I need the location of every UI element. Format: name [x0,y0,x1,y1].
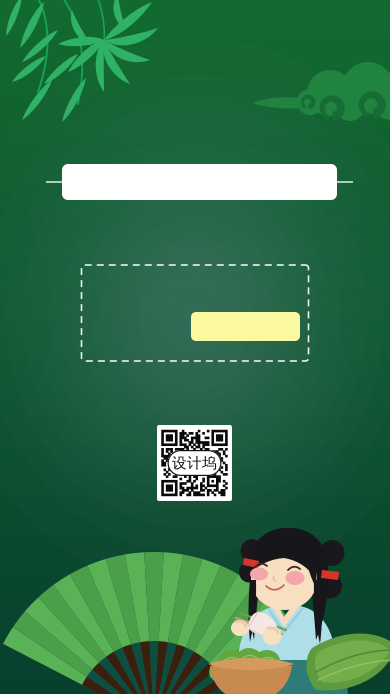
staticText: 设计坞 [172,454,217,472]
button[interactable] [62,164,337,200]
button[interactable]: 扫码关注二维码 [157,425,232,501]
button[interactable] [191,312,300,341]
